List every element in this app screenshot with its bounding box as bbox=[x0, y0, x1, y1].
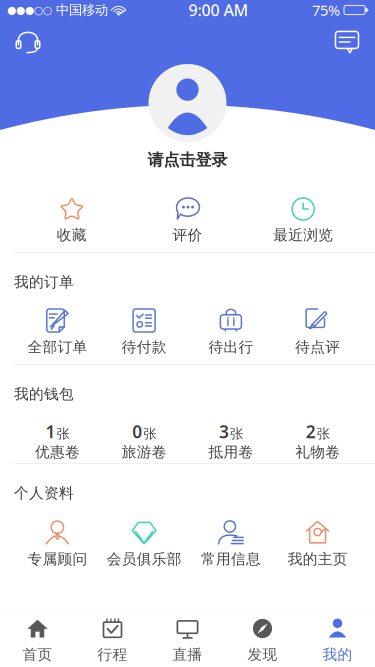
button[interactable]: 1 bbox=[14, 403, 101, 463]
button[interactable]: 2 bbox=[274, 403, 361, 463]
button[interactable]: 最近浏览 bbox=[245, 180, 361, 252]
button[interactable]: 首页 bbox=[0, 612, 75, 667]
staticText: 待出行 bbox=[208, 338, 253, 356]
button[interactable]: 常用信息 bbox=[187, 502, 274, 574]
staticText: 常用信息 bbox=[201, 550, 261, 568]
staticText: 75% bbox=[312, 0, 340, 20]
staticText: 中国移动 bbox=[52, 2, 108, 18]
staticText: 3 bbox=[219, 420, 229, 443]
staticText: 张 bbox=[317, 426, 330, 442]
staticText: 请点击登录 bbox=[147, 150, 227, 170]
staticText: 礼物卷 bbox=[295, 443, 340, 461]
staticText: 会员俱乐部 bbox=[107, 550, 182, 568]
button[interactable]: 直播 bbox=[150, 612, 225, 667]
button[interactable]: 全部订单 bbox=[14, 291, 101, 364]
staticText: ●●●○○ bbox=[7, 4, 52, 16]
staticText: 我的 bbox=[322, 645, 352, 663]
staticText: 张 bbox=[230, 426, 243, 442]
staticText: 首页 bbox=[22, 645, 52, 663]
staticText: 9:00 AM bbox=[188, 0, 248, 21]
button[interactable]: 消息 bbox=[325, 20, 369, 63]
staticText: 待点评 bbox=[295, 338, 340, 356]
button[interactable]: 评价 bbox=[130, 180, 245, 252]
staticText: 专属顾问 bbox=[27, 550, 87, 568]
staticText: 旅游卷 bbox=[122, 443, 167, 461]
staticText: 优惠卷 bbox=[35, 443, 80, 461]
staticText: 收藏 bbox=[57, 226, 87, 244]
staticText: 直播 bbox=[172, 645, 202, 663]
staticText: 评价 bbox=[172, 226, 202, 244]
staticText: 我的主页 bbox=[288, 550, 348, 568]
button[interactable]: 待点评 bbox=[274, 291, 361, 364]
button[interactable]: 客服 bbox=[6, 20, 50, 63]
staticText: 我的钱包 bbox=[14, 385, 74, 403]
button[interactable]: 3 bbox=[187, 403, 274, 463]
button[interactable]: 专属顾问 bbox=[14, 502, 101, 574]
staticText: 发现 bbox=[247, 645, 277, 663]
button[interactable]: 收藏 bbox=[14, 180, 130, 252]
button[interactable]: 0 bbox=[101, 403, 188, 463]
button[interactable]: 我的 bbox=[300, 612, 375, 667]
staticText: 最近浏览 bbox=[273, 226, 333, 244]
button[interactable]: 待出行 bbox=[187, 291, 274, 364]
staticText: 我的订单 bbox=[14, 273, 74, 291]
staticText: 个人资料 bbox=[14, 484, 74, 502]
staticText: 张 bbox=[143, 426, 156, 442]
button[interactable]: 待付款 bbox=[101, 291, 188, 364]
staticText: 张 bbox=[56, 426, 69, 442]
button[interactable]: 会员俱乐部 bbox=[101, 502, 188, 574]
button[interactable]: 发现 bbox=[225, 612, 300, 667]
staticText: 0 bbox=[132, 420, 142, 443]
staticText: 1 bbox=[45, 420, 55, 443]
staticText: 行程 bbox=[97, 645, 127, 663]
staticText: 待付款 bbox=[122, 338, 167, 356]
button[interactable]: 我的主页 bbox=[274, 502, 361, 574]
button[interactable]: 行程 bbox=[75, 612, 150, 667]
staticText: 2 bbox=[306, 420, 316, 443]
staticText: 抵用卷 bbox=[208, 443, 253, 461]
staticText: 全部订单 bbox=[27, 338, 87, 356]
